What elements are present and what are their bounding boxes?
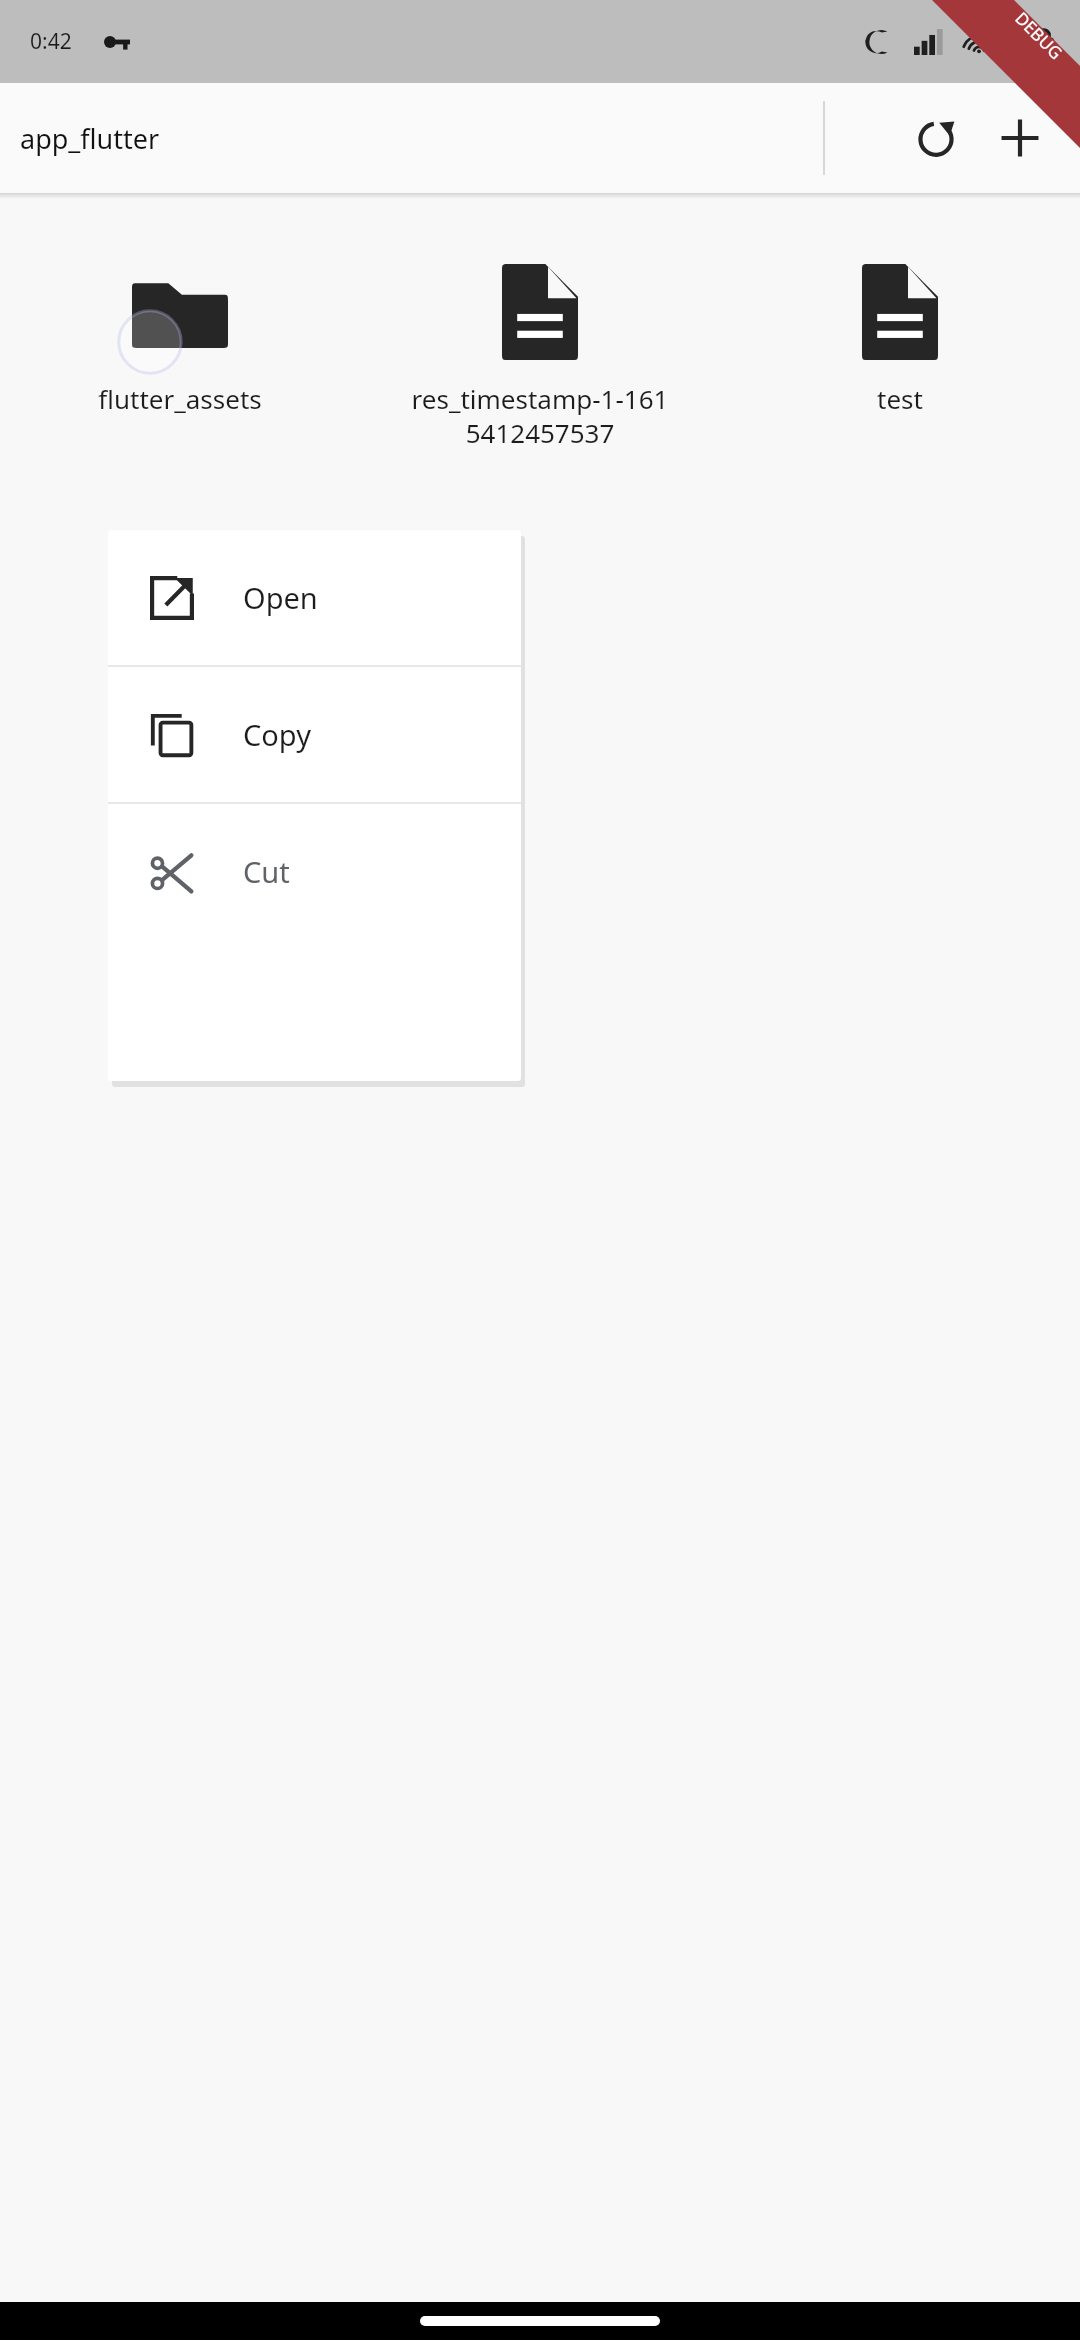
button[interactable]: res_timestamp-1-161 5412457537 bbox=[360, 247, 720, 450]
staticText: flutter_assets bbox=[8, 381, 352, 416]
button[interactable]: Add bbox=[978, 96, 1062, 180]
staticText: test bbox=[728, 381, 1072, 416]
button[interactable]: Refresh bbox=[894, 96, 978, 180]
button[interactable]: test bbox=[720, 247, 1080, 416]
button[interactable]: Open bbox=[108, 530, 521, 665]
staticText: Open bbox=[243, 578, 318, 617]
staticText: Copy bbox=[243, 715, 311, 754]
staticText: res_timestamp-1-161 5412457537 bbox=[368, 381, 712, 450]
staticText: app_flutter bbox=[20, 120, 160, 157]
button[interactable]: Cut bbox=[108, 804, 521, 939]
staticText: Cut bbox=[243, 852, 290, 891]
button[interactable]: flutter_assets bbox=[0, 247, 360, 416]
staticText: DEBUG bbox=[1010, 7, 1068, 64]
button[interactable]: Copy bbox=[108, 667, 521, 802]
staticText: 0:42 bbox=[30, 27, 72, 56]
